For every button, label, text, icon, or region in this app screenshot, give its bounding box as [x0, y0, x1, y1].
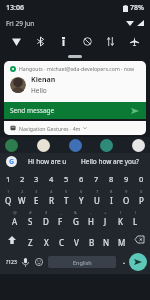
button[interactable]: #	[23, 208, 38, 229]
staticText: Send message	[10, 106, 55, 115]
button[interactable]: (	[113, 208, 128, 229]
button[interactable]: Flashlight	[55, 33, 71, 49]
staticText: Hangouts · michael@xda-developers.com · …	[19, 65, 135, 72]
button[interactable]	[69, 139, 82, 152]
button[interactable]: N	[99, 229, 114, 250]
button[interactable]: Send message	[4, 102, 146, 119]
button[interactable]: English	[48, 256, 116, 268]
staticText: Hello how are you?	[81, 157, 139, 166]
button[interactable]: +	[98, 208, 113, 229]
staticText: 6	[79, 174, 84, 184]
button[interactable]: Google	[6, 156, 17, 167]
button[interactable]: Hi how are u	[28, 157, 67, 166]
button[interactable]: 2	[15, 187, 29, 208]
button[interactable]: 5	[59, 170, 74, 187]
staticText: +	[104, 210, 107, 216]
staticText: Q	[5, 195, 12, 206]
button[interactable]: C	[54, 229, 69, 250]
button[interactable]: $	[38, 208, 53, 229]
staticText: _	[60, 210, 62, 216]
button[interactable]: ?123	[3, 250, 19, 274]
staticText: 78%	[130, 3, 144, 13]
button[interactable]: 1	[1, 170, 15, 187]
button[interactable]: Emoji	[32, 250, 45, 274]
staticText: P	[139, 195, 144, 206]
button[interactable]: X	[38, 229, 54, 250]
button[interactable]	[37, 139, 50, 152]
staticText: 1	[6, 174, 11, 184]
button[interactable]: 6	[74, 170, 89, 187]
button[interactable]: Auto rotate	[79, 33, 95, 49]
staticText: 2	[20, 174, 25, 184]
button[interactable]: Send	[129, 105, 140, 116]
staticText: G	[9, 157, 15, 167]
button[interactable]: Bluetooth	[32, 33, 48, 49]
staticText: Kienan	[31, 75, 56, 85]
staticText: 4	[50, 189, 53, 195]
button[interactable]: .	[119, 250, 129, 274]
button[interactable]: -	[83, 208, 98, 229]
button[interactable]: Hangouts · michael@xda-developers.com · …	[4, 61, 146, 102]
staticText: R	[49, 195, 54, 206]
staticText: W	[18, 195, 26, 206]
staticText: M	[118, 237, 126, 248]
staticText: 13:06	[6, 3, 24, 13]
button[interactable]: 3	[29, 187, 44, 208]
staticText: 8	[109, 174, 114, 184]
button[interactable]: 0	[134, 170, 149, 187]
button[interactable]: Voice input	[19, 250, 32, 274]
button[interactable]: Z	[22, 229, 38, 250]
button[interactable]: M	[114, 229, 129, 250]
button[interactable]: )	[128, 208, 143, 229]
staticText: English	[73, 259, 92, 266]
button[interactable]: Send	[129, 253, 147, 271]
button[interactable]: 7	[89, 170, 104, 187]
staticText: (	[120, 210, 122, 216]
button[interactable]: Hello how are you?	[81, 157, 139, 166]
button[interactable]: &	[68, 208, 83, 229]
button[interactable]: 8	[104, 170, 119, 187]
button[interactable]: Shift	[1, 229, 22, 250]
button[interactable]: 4	[44, 187, 59, 208]
button[interactable]: 9	[119, 170, 134, 187]
button[interactable]: @	[7, 208, 23, 229]
staticText: A	[12, 216, 18, 227]
button[interactable]: 8	[104, 187, 119, 208]
staticText: 0	[139, 174, 144, 184]
button[interactable]	[100, 139, 113, 152]
button[interactable]: Backspace	[129, 229, 149, 250]
staticText: E	[34, 195, 39, 206]
button[interactable]: B	[84, 229, 99, 250]
button[interactable]: V	[69, 229, 84, 250]
staticText: $	[45, 210, 48, 216]
button[interactable]: 7	[89, 187, 104, 208]
button[interactable]	[132, 139, 145, 152]
button[interactable]: Airplane mode	[126, 33, 142, 49]
staticText: C	[59, 237, 65, 248]
button[interactable]: 6	[74, 187, 89, 208]
staticText: .	[123, 257, 125, 267]
staticText: Z	[28, 237, 33, 248]
button[interactable]: Wi-Fi	[8, 33, 24, 49]
button[interactable]: 1	[1, 187, 15, 208]
staticText: Y	[79, 195, 84, 206]
staticText: Hi how are u	[28, 157, 67, 166]
staticText: -	[90, 210, 92, 216]
staticText: 9	[125, 189, 128, 195]
button[interactable]: Navigation Gestures · 4m	[4, 121, 146, 135]
button[interactable]: _	[53, 208, 68, 229]
staticText: 8	[110, 189, 113, 195]
button[interactable]: Mobile data	[102, 33, 118, 49]
button[interactable]: 9	[119, 187, 134, 208]
staticText: 7	[94, 174, 99, 184]
button[interactable]	[5, 139, 18, 152]
staticText: 4	[49, 174, 54, 184]
button[interactable]: 3	[29, 170, 44, 187]
button[interactable]: 0	[134, 187, 149, 208]
staticText: Navigation Gestures · 4m	[19, 125, 81, 132]
staticText: 3	[35, 189, 38, 195]
button[interactable]: 4	[44, 170, 59, 187]
staticText: 7	[96, 189, 99, 195]
button[interactable]: 2	[15, 170, 29, 187]
button[interactable]: 5	[59, 187, 74, 208]
